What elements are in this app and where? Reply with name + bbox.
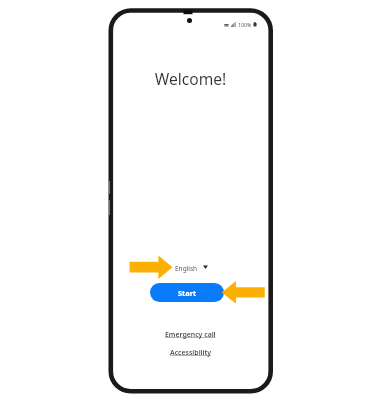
- staticText: Welcome!: [113, 68, 268, 89]
- staticText: Accessibility: [170, 348, 212, 357]
- button[interactable]: Accessibility: [113, 345, 268, 359]
- button[interactable]: Choose language, English: [175, 264, 208, 273]
- staticText: Start: [178, 288, 197, 298]
- staticText: 100%: [238, 21, 252, 28]
- staticText: English: [175, 264, 198, 273]
- button[interactable]: Start: [150, 283, 224, 302]
- button[interactable]: Emergency call: [113, 327, 268, 341]
- staticText: Emergency call: [165, 330, 216, 339]
